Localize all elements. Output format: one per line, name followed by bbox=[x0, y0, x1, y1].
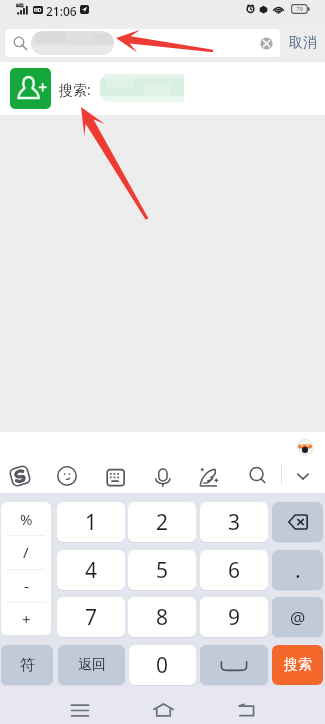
button[interactable]: 7 bbox=[57, 597, 125, 637]
button[interactable]: 9 bbox=[200, 597, 268, 637]
button[interactable]: Emoji bbox=[51, 460, 83, 492]
staticText: 79 bbox=[296, 5, 303, 13]
staticText: 5 bbox=[156, 556, 169, 585]
staticText: / bbox=[23, 542, 29, 562]
button[interactable]: + bbox=[1, 602, 51, 635]
staticText: 1 bbox=[85, 508, 98, 537]
button[interactable]: Keyboard bbox=[99, 460, 131, 492]
staticText: - bbox=[24, 576, 29, 596]
button[interactable]: Recent apps bbox=[58, 692, 102, 724]
button[interactable] bbox=[5, 29, 280, 57]
staticText: 返回 bbox=[78, 656, 106, 674]
staticText: HD bbox=[34, 7, 42, 14]
button[interactable]: . bbox=[272, 550, 323, 590]
staticText: 符 bbox=[20, 656, 35, 675]
staticText: 搜索: bbox=[59, 80, 91, 99]
button[interactable]: Collapse keyboard bbox=[287, 460, 319, 492]
staticText: 0 bbox=[156, 651, 169, 680]
button[interactable]: - bbox=[1, 569, 51, 602]
staticText: @ bbox=[290, 606, 306, 629]
staticText: 搜索 bbox=[284, 656, 312, 674]
staticText: 3 bbox=[228, 508, 241, 537]
staticText: + bbox=[22, 609, 31, 629]
button[interactable]: Home bbox=[141, 692, 185, 724]
button[interactable]: 返回 bbox=[58, 645, 125, 685]
button[interactable]: Clear bbox=[254, 31, 278, 55]
button[interactable]: 8 bbox=[128, 597, 196, 637]
staticText: . bbox=[295, 556, 301, 585]
staticText: 21:06 bbox=[46, 3, 77, 19]
button[interactable]: Space bbox=[200, 645, 268, 685]
button[interactable]: % bbox=[1, 502, 51, 535]
button[interactable]: @ bbox=[272, 597, 323, 637]
staticText: 取消 bbox=[289, 34, 317, 52]
button[interactable]: 3 bbox=[200, 502, 268, 542]
button[interactable]: 搜索 bbox=[272, 645, 323, 685]
button[interactable]: Search bbox=[242, 460, 274, 492]
button[interactable]: Back bbox=[224, 692, 268, 724]
button[interactable]: 0 bbox=[129, 645, 196, 685]
staticText: 8 bbox=[156, 603, 169, 632]
staticText: 2 bbox=[156, 508, 169, 537]
staticText: 6 bbox=[228, 556, 241, 585]
staticText: 4 bbox=[85, 556, 98, 585]
staticText: 7 bbox=[85, 603, 98, 632]
button[interactable]: 5 bbox=[128, 550, 196, 590]
button[interactable]: 2 bbox=[128, 502, 196, 542]
staticText: % bbox=[20, 509, 33, 529]
button[interactable]: / bbox=[1, 535, 51, 568]
button[interactable]: Handwriting bbox=[192, 460, 224, 492]
button[interactable]: Voice input bbox=[146, 460, 178, 492]
staticText: 9 bbox=[228, 603, 241, 632]
button[interactable]: 取消 bbox=[284, 28, 322, 57]
button[interactable]: 4 bbox=[57, 550, 125, 590]
button[interactable]: 符 bbox=[1, 645, 53, 685]
button[interactable]: 1 bbox=[57, 502, 125, 542]
button[interactable]: Sogou input bbox=[4, 460, 36, 492]
button[interactable]: 6 bbox=[200, 550, 268, 590]
button[interactable]: Backspace bbox=[272, 502, 323, 542]
button[interactable] bbox=[0, 62, 325, 115]
